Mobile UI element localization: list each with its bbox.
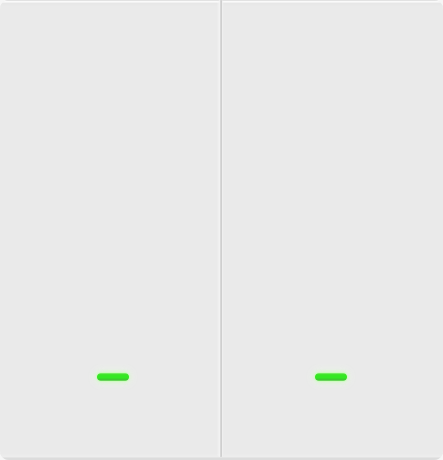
- button[interactable]: Left switch: [0, 0, 217, 460]
- button[interactable]: Right switch: [217, 0, 443, 460]
